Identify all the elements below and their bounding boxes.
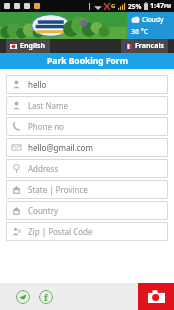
button[interactable]: hello <box>6 75 168 94</box>
staticText: 1:47 <box>150 1 164 11</box>
staticText: f <box>44 291 48 303</box>
staticText: 25% <box>128 2 142 11</box>
staticText: Last Name <box>28 100 69 111</box>
button[interactable]: Francais <box>121 39 168 53</box>
button[interactable]: hello@gmail.com <box>6 138 168 157</box>
button[interactable]: Last Name <box>6 96 168 115</box>
staticText: hello <box>28 79 47 90</box>
staticText: Address <box>28 163 59 174</box>
button[interactable]: Phone no <box>6 117 168 136</box>
button[interactable]: Facebook <box>39 290 53 304</box>
staticText: Country <box>28 205 59 216</box>
staticText: Phone no <box>28 121 64 132</box>
staticText: PM <box>164 3 172 9</box>
button[interactable]: Zip | Postal Code <box>6 222 168 241</box>
button[interactable]: Weather <box>127 12 174 39</box>
staticText: 36 °C <box>131 27 149 37</box>
staticText: English <box>20 41 46 51</box>
button[interactable]: Camera <box>138 283 174 310</box>
staticText: Park Booking Form <box>47 55 128 67</box>
button[interactable]: Address <box>6 159 168 178</box>
button[interactable]: Twitter <box>16 290 30 304</box>
staticText: G <box>111 2 116 10</box>
staticText: Cloudy <box>142 15 164 24</box>
button[interactable]: Country <box>6 201 168 220</box>
staticText: hello@gmail.com <box>28 142 93 153</box>
button[interactable]: State | Province <box>6 180 168 199</box>
staticText: Zip | Postal Code <box>28 226 93 237</box>
staticText: State | Province <box>28 184 88 195</box>
staticText: Francais <box>135 41 164 51</box>
button[interactable]: English <box>6 39 50 53</box>
